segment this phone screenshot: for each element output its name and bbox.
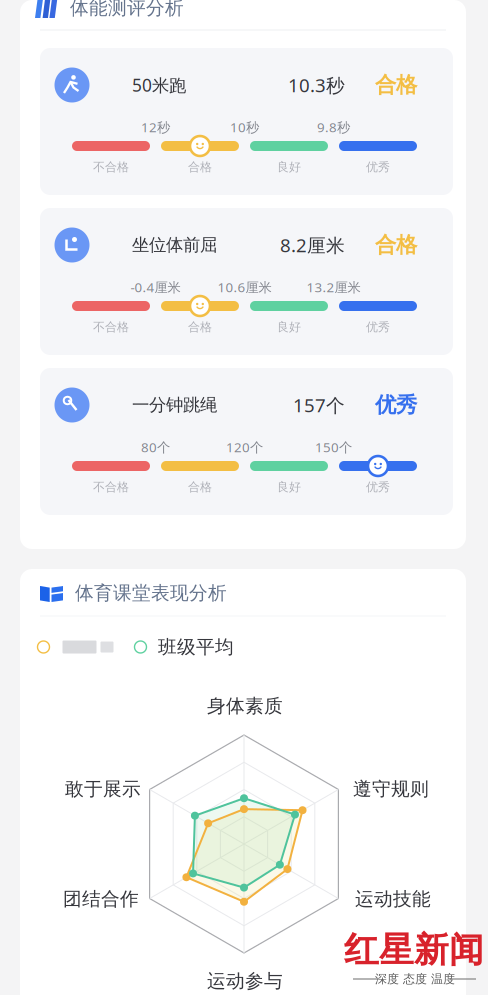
staticText: 合格 — [188, 160, 212, 174]
staticText: 合格 — [188, 320, 212, 334]
staticText: 优秀 — [375, 392, 417, 418]
staticText: 运动参与 — [207, 969, 283, 992]
staticText: 合格 — [188, 480, 212, 494]
staticText: 120个 — [226, 438, 263, 456]
staticText: 深度 态度 温度 — [375, 972, 455, 986]
staticText: 合格 — [375, 232, 417, 258]
staticText: 10.3秒 — [288, 73, 345, 97]
staticText: 良好 — [277, 480, 301, 494]
staticText: 9.8秒 — [317, 118, 350, 136]
staticText: 良好 — [277, 320, 301, 334]
staticText: 合格 — [375, 72, 417, 98]
staticText: 良好 — [277, 160, 301, 174]
staticText: 不合格 — [93, 160, 129, 174]
staticText: 优秀 — [366, 160, 390, 174]
staticText: 10.6厘米 — [217, 278, 271, 296]
staticText: 优秀 — [366, 320, 390, 334]
staticText: 遵守规则 — [353, 777, 429, 800]
staticText: 150个 — [315, 438, 352, 456]
staticText: 优秀 — [366, 480, 390, 494]
staticText: 50米跑 — [132, 73, 186, 96]
staticText: 身体素质 — [207, 694, 283, 717]
staticText: 班级平均 — [158, 635, 234, 658]
staticText: 8.2厘米 — [280, 233, 345, 257]
staticText: 团结合作 — [63, 887, 139, 910]
staticText: 敢于展示 — [65, 777, 141, 800]
staticText: 10秒 — [230, 118, 259, 136]
staticText: 不合格 — [93, 320, 129, 334]
staticText: 12秒 — [141, 118, 170, 136]
staticText: 体能测评分析 — [70, 0, 184, 19]
staticText: 一分钟跳绳 — [132, 394, 217, 416]
staticText: 157个 — [293, 393, 345, 417]
staticText: 体育课堂表现分析 — [75, 581, 227, 604]
staticText: 13.2厘米 — [306, 278, 360, 296]
staticText: -0.4厘米 — [130, 278, 180, 296]
staticText: 不合格 — [93, 480, 129, 494]
staticText: 坐位体前屈 — [132, 234, 217, 256]
staticText: 80个 — [141, 438, 170, 456]
staticText: 红星新闻 — [344, 929, 484, 971]
staticText: 运动技能 — [355, 887, 431, 910]
